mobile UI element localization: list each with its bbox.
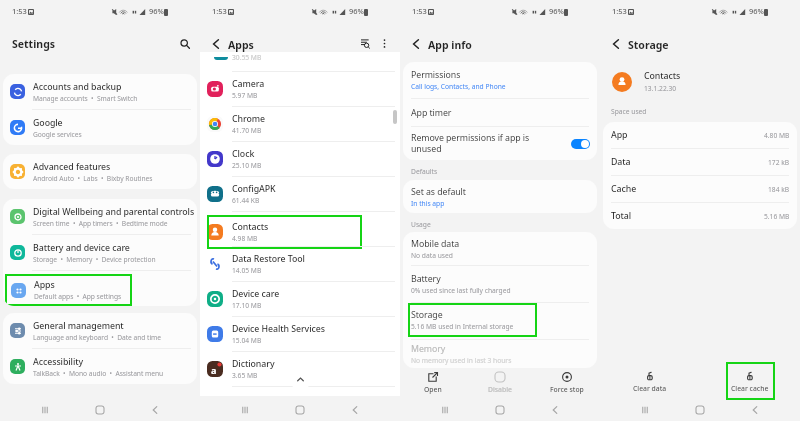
staticText: 15.04 MB	[232, 336, 262, 345]
staticText: Mobile data	[411, 238, 460, 250]
button[interactable]: Home	[291, 401, 309, 419]
staticText: Battery	[411, 273, 441, 285]
button[interactable]: Recents	[236, 401, 254, 419]
button[interactable]: Battery	[403, 266, 597, 302]
button[interactable]: Device Health Services	[200, 317, 400, 351]
button[interactable]: Back	[209, 37, 223, 51]
staticText: Device Health Services	[232, 323, 325, 335]
button[interactable]: Home	[91, 401, 109, 419]
staticText: 96%	[149, 6, 164, 16]
button[interactable]: Recents	[636, 401, 654, 419]
staticText: No memory used in last 3 hours	[411, 356, 512, 365]
button[interactable]: Back	[609, 37, 623, 51]
staticText: 61.44 KB	[232, 196, 260, 205]
staticText: 1:53	[612, 6, 627, 16]
button[interactable]: Set as default	[403, 180, 597, 213]
staticText: Accounts and backup	[33, 81, 122, 93]
button[interactable]: Total	[603, 203, 797, 229]
button[interactable]: Back	[409, 37, 423, 51]
button[interactable]: Camera	[200, 72, 400, 106]
staticText: Contacts	[232, 221, 269, 233]
staticText: 25.10 MB	[232, 161, 262, 170]
staticText: Device care	[232, 288, 280, 300]
button[interactable]: Disable	[466, 368, 533, 396]
button[interactable]: Permissions	[403, 62, 597, 98]
button[interactable]: Force stop	[533, 368, 600, 396]
staticText: Manage accounts • Smart Switch	[33, 94, 138, 103]
staticText: Memory	[411, 343, 446, 355]
staticText: 17.10 MB	[232, 301, 262, 310]
staticText: Screen time • App timers • Bedtime mode	[33, 219, 168, 228]
staticText: 0% used since last fully charged	[411, 286, 511, 295]
staticText: Contacts	[644, 70, 681, 82]
button[interactable]: Remove permissions if app is unused	[403, 127, 597, 160]
button[interactable]: Clear data	[600, 354, 700, 396]
staticText: 5.97 MB	[232, 91, 258, 100]
staticText: Space used	[611, 107, 647, 116]
button[interactable]: Back	[146, 401, 164, 419]
button[interactable]: Data Restore Tool	[200, 247, 400, 281]
button[interactable]: Mobile data	[403, 232, 597, 265]
staticText: Default apps • App settings	[34, 292, 122, 301]
button[interactable]: Back	[546, 401, 564, 419]
button[interactable]: Clock	[200, 142, 400, 176]
button[interactable]: Back	[346, 401, 364, 419]
button[interactable]: Home	[491, 401, 509, 419]
staticText: General management	[33, 320, 124, 332]
button[interactable]: Clear cache	[700, 354, 800, 396]
button[interactable]: Search	[177, 36, 193, 52]
staticText: 5.16 MB used in Internal storage	[411, 322, 514, 331]
staticText: In this app	[411, 199, 445, 208]
button[interactable]: Contacts	[200, 212, 400, 246]
button[interactable]: Device care	[200, 282, 400, 316]
staticText: Data Restore Tool	[232, 253, 305, 265]
button[interactable]: Storage	[403, 303, 597, 339]
staticText: App info	[428, 38, 472, 52]
staticText: Defaults	[411, 167, 438, 176]
button[interactable]: Scroll to top	[290, 369, 311, 390]
button[interactable]: a	[200, 352, 400, 386]
staticText: Open	[424, 385, 442, 394]
staticText: Call logs, Contacts, and Phone	[411, 82, 506, 91]
button[interactable]: General management	[3, 313, 197, 348]
staticText: Set as default	[411, 186, 466, 198]
button[interactable]: Recents	[36, 401, 54, 419]
staticText: Cache	[611, 183, 637, 195]
staticText: App timer	[411, 107, 452, 119]
button[interactable]: Open	[400, 368, 466, 396]
button[interactable]: Google	[3, 110, 197, 145]
button[interactable]: Apps	[3, 271, 197, 306]
button[interactable]: Home	[691, 401, 709, 419]
staticText: 5.16 MB	[764, 212, 790, 221]
button[interactable]: App timer	[403, 99, 597, 126]
staticText: Clear data	[633, 384, 667, 393]
button[interactable]: Back	[746, 401, 764, 419]
button[interactable]: Accessibility	[3, 349, 197, 384]
button[interactable]: Recents	[436, 401, 454, 419]
staticText: Force stop	[550, 385, 584, 394]
button[interactable]: Memory	[403, 340, 597, 368]
staticText: Settings	[12, 37, 56, 51]
staticText: Storage	[628, 38, 669, 52]
button[interactable]: Data	[603, 149, 797, 175]
button[interactable]: Chrome	[200, 107, 400, 141]
button[interactable]: More options	[378, 37, 391, 50]
button[interactable]: Advanced features	[3, 154, 197, 189]
button[interactable]: Sort and search	[359, 37, 372, 50]
button[interactable]: Digital Wellbeing and parental controls	[3, 199, 197, 234]
button[interactable]: ConfigAPK	[200, 177, 400, 211]
staticText: 96%	[749, 6, 764, 16]
staticText: Advanced features	[33, 161, 111, 173]
staticText: Apps	[228, 38, 254, 52]
button[interactable]: Battery and device care	[3, 235, 197, 270]
staticText: 184 kB	[768, 185, 790, 194]
staticText: No data used	[411, 251, 453, 260]
staticText: 96%	[549, 6, 564, 16]
button[interactable]: App	[603, 122, 797, 148]
button[interactable]: Accounts and backup	[3, 74, 197, 109]
staticText: 4.80 MB	[764, 131, 790, 140]
staticText: 13.1.22.30	[644, 84, 677, 93]
staticText: Storage	[411, 309, 443, 321]
staticText: 3.65 MB	[232, 371, 258, 380]
button[interactable]: Cache	[603, 176, 797, 202]
